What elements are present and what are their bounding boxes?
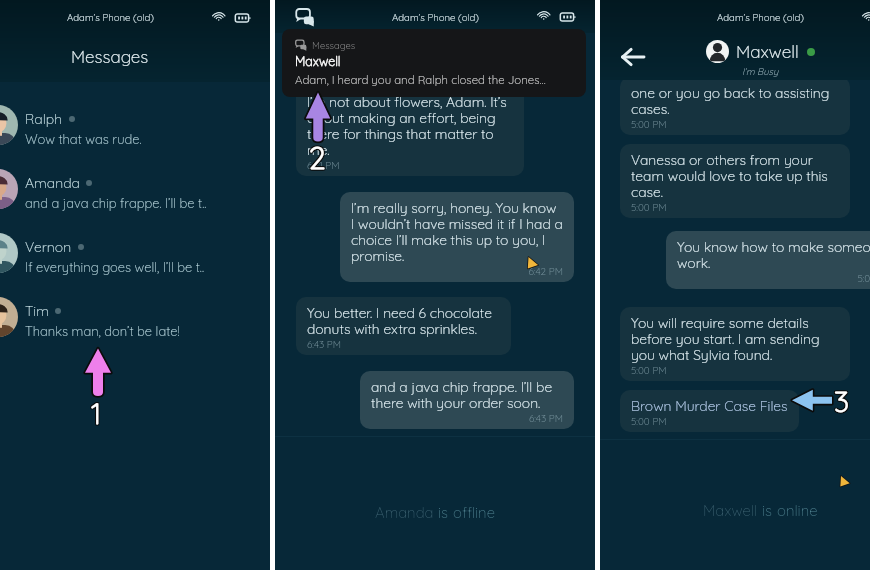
button[interactable]: Brown Murder Case Files	[620, 390, 799, 432]
staticText: Wow that was rude.	[25, 131, 142, 147]
staticText: 1	[91, 397, 102, 432]
button[interactable]: I’m really sorry, honey. You know I woul…	[340, 192, 574, 282]
button[interactable]: You will require some details before you…	[620, 307, 850, 381]
staticText: 2	[309, 138, 326, 176]
staticText: 2	[310, 140, 327, 178]
staticText: Adam’s Phone (old)	[392, 11, 479, 23]
staticText: Brown Murder Case Files	[631, 397, 788, 414]
staticText: 1	[92, 397, 103, 432]
button[interactable]: Tim	[0, 285, 270, 349]
staticText: Vanessa or others from your team would l…	[631, 151, 839, 200]
staticText: offline	[453, 503, 495, 522]
staticText: 5:00 PM	[631, 415, 667, 428]
button[interactable]: You better. I need 6 chocolate donuts wi…	[296, 297, 511, 355]
staticText: If everything goes well, I’ll be t..	[25, 259, 204, 275]
staticText: 5:00 PM	[631, 201, 839, 214]
staticText: 1	[91, 395, 102, 430]
staticText: 3	[835, 383, 851, 419]
staticText: 6:43 PM	[307, 338, 500, 351]
staticText: Amanda	[375, 503, 438, 522]
staticText: Maxwell	[736, 41, 799, 63]
staticText: Messages	[71, 46, 149, 67]
staticText: You better. I need 6 chocolate donuts wi…	[307, 304, 500, 337]
staticText: online	[777, 501, 818, 520]
staticText: Vernon	[25, 238, 72, 256]
staticText: 3	[835, 384, 851, 420]
staticText: is	[762, 501, 777, 520]
button[interactable]: Vanessa or others from your team would l…	[620, 144, 850, 218]
staticText: Adam’s Phone (old)	[67, 11, 154, 23]
button[interactable]: I’m not about flowers, Adam. It’s about …	[296, 86, 524, 176]
button[interactable]: Messages	[295, 7, 315, 27]
staticText: 1	[91, 396, 102, 431]
staticText: 3	[835, 382, 851, 418]
staticText: 6:41 PM	[307, 159, 513, 172]
staticText: 1	[92, 396, 103, 431]
staticText: 1	[90, 395, 101, 430]
staticText: and a java chip frappe. I’ll be there wi…	[371, 378, 563, 411]
staticText: I’m not about flowers, Adam. It’s about …	[307, 93, 513, 158]
staticText: and a java chip frappe. I’ll be t..	[25, 195, 207, 211]
staticText: 5:00 PM	[631, 364, 839, 377]
staticText: Tim	[25, 302, 49, 320]
staticText: Maxwell	[703, 501, 762, 520]
button[interactable]: You know how to make someone work.	[666, 231, 870, 289]
staticText: Amanda	[25, 174, 80, 192]
staticText: Adam’s Phone (old)	[717, 11, 804, 23]
staticText: 1	[90, 397, 101, 432]
staticText: 3	[834, 382, 850, 418]
button[interactable]: Ralph	[0, 93, 270, 157]
staticText: 2	[309, 139, 326, 177]
staticText: 1	[90, 396, 101, 431]
staticText: Thanks man, don’t be late!	[25, 323, 180, 339]
staticText: 3	[833, 382, 849, 418]
staticText: I’m Busy	[742, 65, 779, 77]
staticText: 2	[310, 138, 327, 176]
staticText: 6:42 PM	[351, 265, 563, 278]
staticText: I’m really sorry, honey. You know I woul…	[351, 199, 563, 264]
staticText: 1	[92, 395, 103, 430]
staticText: one or you go back to assisting cases.	[631, 84, 839, 117]
staticText: Adam, I heard you and Ralph closed the J…	[295, 72, 546, 86]
staticText: 5:00 PM	[677, 272, 870, 285]
staticText: 2	[310, 139, 327, 177]
staticText: 3	[833, 384, 849, 420]
button[interactable]: Vernon	[0, 221, 270, 285]
staticText: 2	[308, 139, 325, 177]
staticText: 6:43 PM	[371, 412, 563, 425]
button[interactable]: Back	[621, 47, 645, 67]
staticText: 3	[833, 383, 849, 419]
button[interactable]: one or you go back to assisting cases.	[620, 80, 850, 135]
staticText: Messages	[312, 39, 356, 51]
staticText: 2	[308, 138, 325, 176]
staticText: 2	[309, 140, 326, 178]
button[interactable]: Amanda	[0, 157, 270, 221]
staticText: You will require some details before you…	[631, 314, 839, 363]
button[interactable]: Messages	[282, 29, 586, 97]
staticText: 5:00 PM	[631, 118, 839, 131]
staticText: 3	[834, 384, 850, 420]
staticText: Maxwell	[295, 53, 341, 69]
button[interactable]: and a java chip frappe. I’ll be there wi…	[360, 371, 574, 429]
staticText: You know how to make someone work.	[677, 238, 870, 271]
staticText: 2	[308, 140, 325, 178]
staticText: Ralph	[25, 110, 63, 128]
staticText: 3	[834, 383, 850, 419]
staticText: is	[438, 503, 453, 522]
